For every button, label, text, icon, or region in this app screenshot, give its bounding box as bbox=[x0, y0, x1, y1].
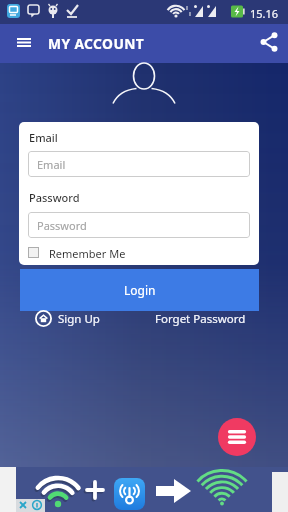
staticText: Sign Up bbox=[58, 311, 100, 327]
button[interactable] bbox=[0, 467, 288, 512]
button[interactable]: Login bbox=[20, 269, 259, 311]
button[interactable]: Email bbox=[28, 151, 250, 177]
button[interactable] bbox=[254, 29, 282, 55]
button[interactable]: Password bbox=[28, 212, 250, 238]
button[interactable] bbox=[218, 418, 256, 456]
staticText: Password bbox=[29, 190, 80, 205]
staticText: Login bbox=[124, 282, 156, 298]
staticText: Email bbox=[37, 157, 66, 172]
button[interactable]: Sign Up bbox=[33, 308, 105, 329]
staticText: Password bbox=[37, 218, 87, 233]
staticText: Forget Password bbox=[155, 311, 246, 327]
staticText: Remember Me bbox=[49, 246, 126, 261]
button[interactable] bbox=[10, 31, 38, 53]
staticText: MY ACCOUNT bbox=[48, 34, 145, 53]
staticText: Email bbox=[29, 130, 58, 145]
staticText: 15.16 bbox=[250, 6, 279, 21]
button[interactable]: Forget Password bbox=[150, 308, 250, 329]
button[interactable]: Remember Me bbox=[28, 247, 148, 263]
